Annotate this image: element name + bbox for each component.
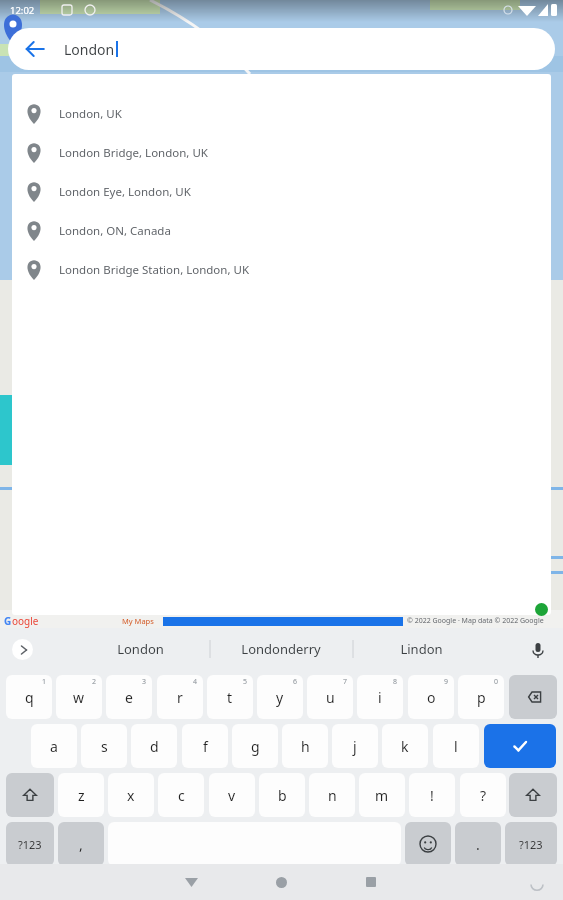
staticText: v bbox=[228, 786, 236, 805]
staticText: p bbox=[477, 688, 486, 707]
staticText: n bbox=[328, 786, 337, 805]
button[interactable]: Back bbox=[175, 872, 207, 892]
staticText: 2 bbox=[92, 677, 97, 687]
staticText: ?123 bbox=[18, 837, 42, 852]
staticText: 8 bbox=[393, 677, 398, 687]
button[interactable]: London bbox=[80, 628, 200, 670]
button[interactable]: ?123 bbox=[6, 822, 54, 866]
button[interactable]: Back bbox=[8, 28, 555, 70]
button[interactable]: Expand suggestions bbox=[12, 639, 33, 660]
button[interactable]: x bbox=[108, 773, 154, 817]
button[interactable]: e bbox=[106, 675, 152, 719]
staticText: 6 bbox=[293, 677, 298, 687]
staticText: My Maps bbox=[122, 616, 154, 626]
button[interactable]: Back bbox=[22, 36, 48, 62]
button[interactable]: z bbox=[58, 773, 104, 817]
button[interactable]: ! bbox=[409, 773, 455, 817]
staticText: l bbox=[454, 737, 458, 756]
staticText: London bbox=[64, 40, 115, 59]
button[interactable]: o bbox=[408, 675, 454, 719]
staticText: London Bridge Station, London, UK bbox=[59, 262, 250, 278]
button[interactable]: Hide keyboard bbox=[525, 872, 549, 892]
button[interactable]: Londonderry bbox=[221, 628, 341, 670]
button[interactable]: v bbox=[209, 773, 255, 817]
button[interactable]: n bbox=[309, 773, 355, 817]
staticText: 4 bbox=[193, 677, 198, 687]
button[interactable]: m bbox=[359, 773, 405, 817]
staticText: 7 bbox=[343, 677, 348, 687]
button[interactable]: Voice input bbox=[527, 639, 549, 661]
staticText: 5 bbox=[243, 677, 248, 687]
staticText: h bbox=[301, 737, 310, 756]
staticText: w bbox=[73, 688, 85, 707]
button[interactable]: emoji bbox=[405, 822, 451, 866]
button[interactable]: h bbox=[282, 724, 328, 768]
button[interactable]: b bbox=[259, 773, 305, 817]
button[interactable]: f bbox=[182, 724, 228, 768]
button[interactable]: k bbox=[382, 724, 428, 768]
button[interactable]: j bbox=[332, 724, 378, 768]
staticText: ? bbox=[480, 786, 487, 805]
button[interactable]: d bbox=[131, 724, 177, 768]
staticText: G bbox=[4, 614, 12, 628]
button[interactable]: p bbox=[458, 675, 504, 719]
staticText: t bbox=[227, 688, 233, 707]
staticText: d bbox=[150, 737, 159, 756]
button[interactable]: i bbox=[357, 675, 403, 719]
button[interactable]: ? bbox=[460, 773, 506, 817]
button[interactable]: l bbox=[433, 724, 479, 768]
button[interactable]: shift bbox=[6, 773, 54, 817]
staticText: . bbox=[476, 835, 480, 854]
staticText: © 2022 Google · Map data © 2022 Google bbox=[407, 616, 544, 626]
button[interactable]: q bbox=[6, 675, 52, 719]
staticText: London bbox=[117, 640, 164, 658]
button[interactable]: London Bridge Station, London, UK bbox=[12, 250, 551, 289]
staticText: x bbox=[127, 786, 135, 805]
staticText: Londonderry bbox=[241, 640, 321, 658]
button[interactable]: s bbox=[81, 724, 127, 768]
staticText: 12:02 bbox=[10, 4, 35, 17]
button[interactable]: London, ON, Canada bbox=[12, 211, 551, 250]
button[interactable]: enter bbox=[484, 724, 556, 768]
button[interactable]: London, UK bbox=[12, 94, 551, 133]
button[interactable]: , bbox=[58, 822, 104, 866]
staticText: London Bridge, London, UK bbox=[59, 145, 208, 161]
staticText: 0 bbox=[494, 677, 499, 687]
staticText: 1 bbox=[42, 677, 47, 687]
button[interactable]: London Bridge, London, UK bbox=[12, 133, 551, 172]
button[interactable]: r bbox=[157, 675, 203, 719]
staticText: r bbox=[177, 688, 183, 707]
staticText: London, UK bbox=[59, 106, 122, 122]
staticText: s bbox=[101, 737, 108, 756]
staticText: j bbox=[353, 737, 357, 756]
staticText: q bbox=[25, 688, 34, 707]
staticText: m bbox=[375, 786, 389, 805]
button[interactable]: a bbox=[31, 724, 77, 768]
staticText: oogle bbox=[12, 614, 39, 628]
button[interactable]: g bbox=[232, 724, 278, 768]
button[interactable]: u bbox=[307, 675, 353, 719]
button[interactable]: Lindon bbox=[361, 628, 481, 670]
staticText: e bbox=[125, 688, 133, 707]
button[interactable]: London Eye, London, UK bbox=[12, 172, 551, 211]
button[interactable]: w bbox=[56, 675, 102, 719]
staticText: 3 bbox=[142, 677, 147, 687]
button[interactable]: c bbox=[158, 773, 204, 817]
button[interactable]: y bbox=[257, 675, 303, 719]
staticText: k bbox=[401, 737, 409, 756]
button[interactable]: shift bbox=[509, 773, 557, 817]
staticText: b bbox=[278, 786, 287, 805]
staticText: ?123 bbox=[519, 837, 543, 852]
staticText: London, ON, Canada bbox=[59, 223, 171, 239]
button[interactable]: backspace bbox=[509, 675, 557, 719]
button[interactable]: t bbox=[207, 675, 253, 719]
button[interactable]: space bbox=[108, 822, 401, 866]
button[interactable]: Recent apps bbox=[355, 872, 387, 892]
staticText: f bbox=[203, 737, 208, 756]
staticText: z bbox=[78, 786, 85, 805]
staticText: g bbox=[251, 737, 260, 756]
staticText: ! bbox=[430, 786, 434, 805]
button[interactable]: ?123 bbox=[505, 822, 557, 866]
button[interactable]: Home bbox=[265, 872, 297, 892]
button[interactable]: . bbox=[455, 822, 501, 866]
